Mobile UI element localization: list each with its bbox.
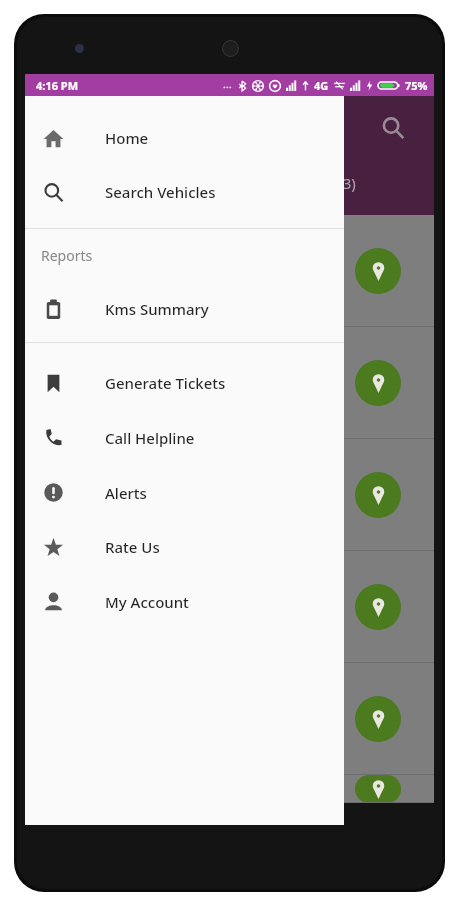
button[interactable]: Kms Summary	[25, 282, 344, 336]
button[interactable]	[25, 775, 434, 803]
button[interactable]	[25, 551, 434, 663]
button[interactable]: Search Vehicles	[25, 165, 344, 219]
staticText: 75%	[405, 78, 428, 93]
staticText: Alerts	[105, 483, 147, 503]
staticText: Reachable (13)	[253, 173, 356, 193]
staticText: Reports	[41, 246, 93, 265]
button[interactable]: Alerts	[25, 465, 344, 520]
staticText: Call Helpline	[105, 428, 195, 448]
staticText: Rate Us	[105, 537, 160, 557]
button[interactable]	[25, 663, 434, 775]
staticText: Generate Tickets	[105, 373, 226, 393]
staticText: 4:16 PM	[36, 78, 79, 93]
staticText: Search Vehicles	[105, 182, 216, 202]
button[interactable]	[25, 327, 434, 439]
button[interactable]	[25, 439, 434, 551]
button[interactable]: Search	[373, 108, 413, 148]
staticText: Home	[105, 128, 149, 148]
button[interactable]: Home	[25, 111, 344, 165]
button[interactable]: Rate Us	[25, 520, 344, 574]
staticText: Kms Summary	[105, 299, 209, 319]
button[interactable]: Generate Tickets	[25, 356, 344, 410]
button[interactable]: Call Helpline	[25, 410, 344, 465]
button[interactable]	[25, 215, 434, 327]
staticText: 4G	[314, 78, 329, 93]
staticText: My Account	[105, 592, 189, 612]
button[interactable]: My Account	[25, 574, 344, 629]
